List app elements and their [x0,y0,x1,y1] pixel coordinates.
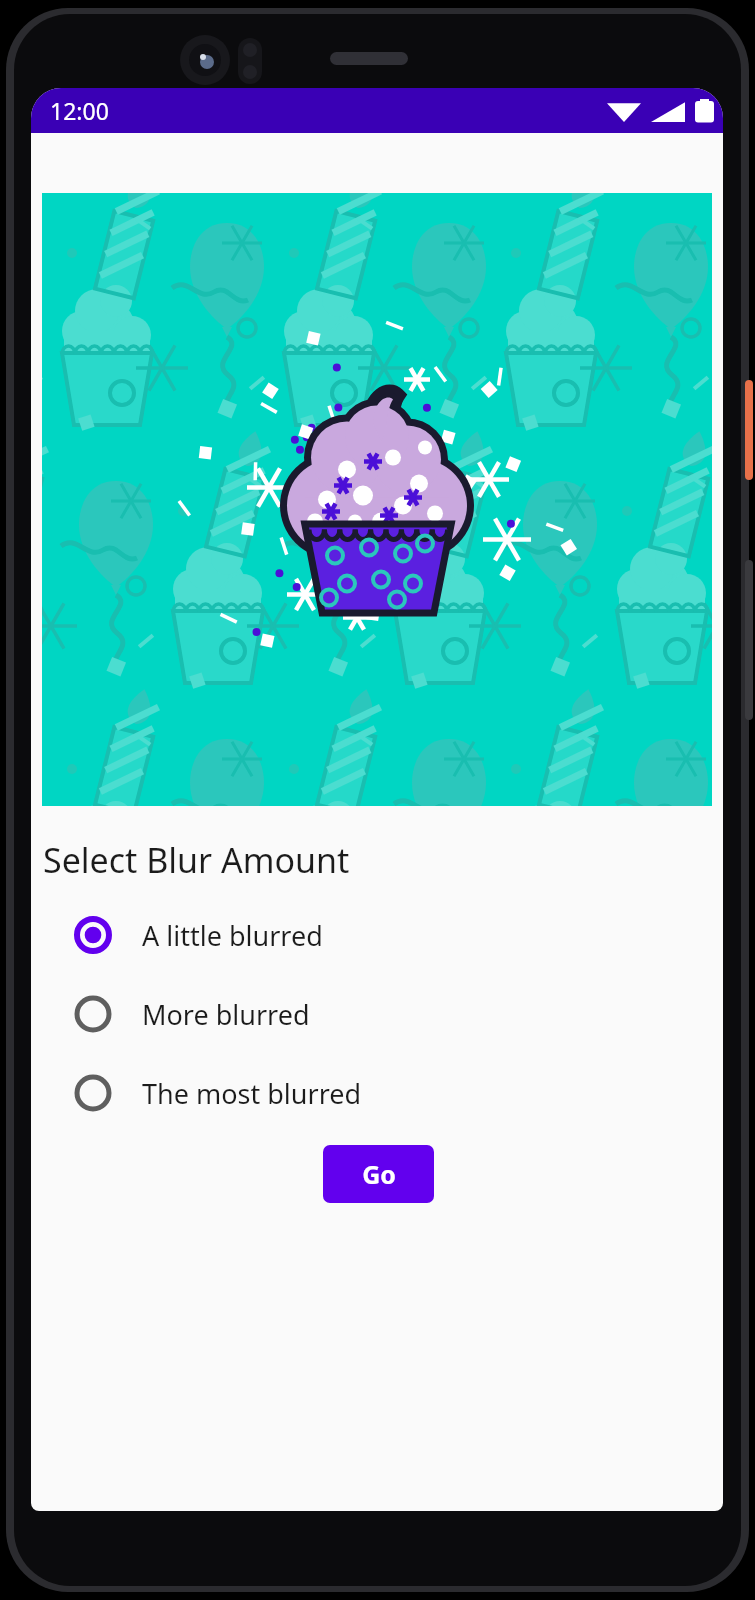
button[interactable]: A little blurred [31,905,723,965]
button[interactable]: Go [323,1145,434,1203]
staticText: 12:00 [50,95,109,126]
staticText: More blurred [142,996,310,1033]
button[interactable]: More blurred [31,984,723,1044]
staticText: Go [362,1157,396,1191]
staticText: The most blurred [142,1075,362,1112]
button[interactable]: The most blurred [31,1063,723,1123]
staticText: A little blurred [142,917,323,954]
staticText: Select Blur Amount [43,837,350,883]
